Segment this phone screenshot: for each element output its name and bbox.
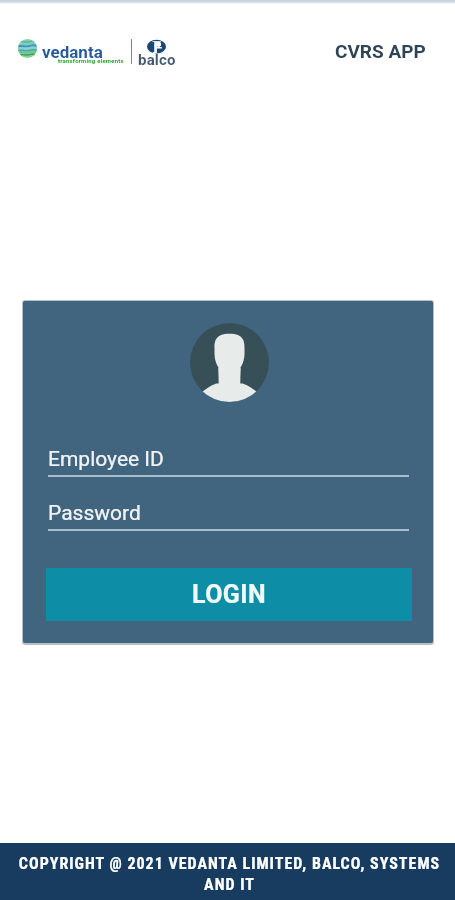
- staticText: COPYRIGHT @ 2021 VEDANTA LIMITED, BALCO,…: [18, 854, 441, 894]
- staticText: balco: [138, 51, 176, 69]
- staticText: transforming elements: [58, 57, 124, 64]
- button[interactable]: LOGIN: [46, 568, 412, 621]
- other: User avatar: [190, 323, 269, 402]
- staticText: CVRS APP: [335, 40, 426, 62]
- button[interactable]: Password: [48, 496, 409, 537]
- staticText: LOGIN: [192, 580, 266, 609]
- staticText: Employee ID: [48, 447, 164, 472]
- staticText: vedanta: [42, 42, 103, 62]
- button[interactable]: Employee ID: [48, 442, 409, 483]
- staticText: Password: [48, 501, 141, 526]
